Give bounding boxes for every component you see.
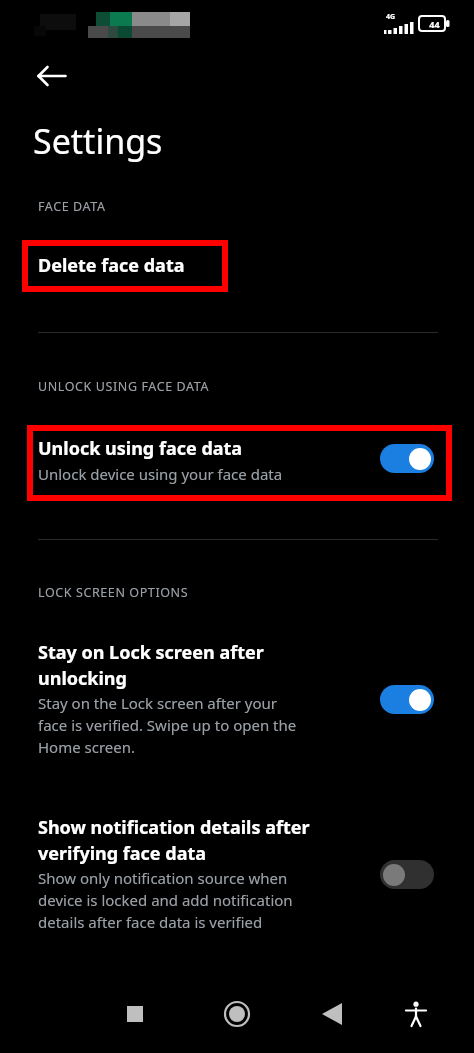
button[interactable]: Toggle on [380, 444, 434, 473]
staticText: 44 [429, 18, 440, 30]
button[interactable]: Home [216, 993, 258, 1035]
staticText: Stay on Lock screen after unlocking [38, 640, 264, 690]
staticText: Unlock using face data [38, 436, 243, 461]
button[interactable]: Accessibility [395, 993, 437, 1035]
button[interactable] [0, 628, 474, 753]
staticText: FACE DATA [38, 198, 106, 215]
button[interactable] [0, 803, 474, 928]
staticText: LOCK SCREEN OPTIONS [38, 584, 189, 601]
button[interactable]: Back [311, 993, 353, 1035]
button[interactable]: Toggle on [380, 685, 434, 714]
staticText: 4G [386, 12, 396, 22]
button[interactable]: Recent apps [114, 993, 156, 1035]
staticText: Show notification details after verifyin… [38, 815, 310, 865]
button[interactable]: Back [28, 52, 76, 100]
staticText: Delete face data [38, 253, 185, 278]
staticText: Settings [33, 118, 163, 164]
staticText: Unlock device using your face data [38, 464, 283, 484]
button[interactable]: Delete face data [38, 253, 185, 278]
staticText: Stay on the Lock screen after your face … [38, 693, 297, 758]
staticText: Show only notification source when devic… [38, 868, 293, 933]
button[interactable] [0, 424, 474, 502]
button[interactable]: Toggle off [380, 860, 434, 889]
staticText: UNLOCK USING FACE DATA [38, 378, 210, 395]
